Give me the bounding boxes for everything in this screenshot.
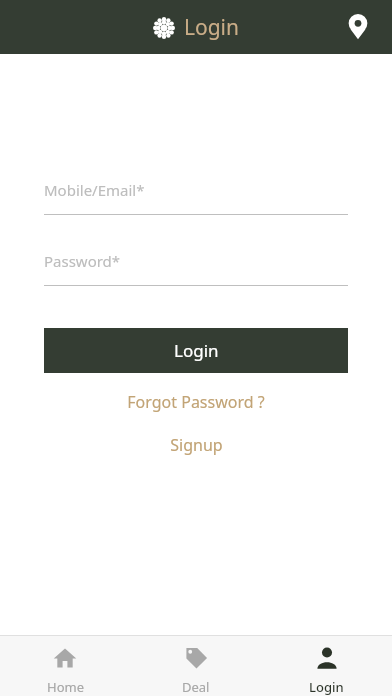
staticText: Login [309, 678, 344, 696]
staticText: Login [174, 339, 219, 362]
button[interactable]: Forgot Password ? [0, 391, 392, 413]
button[interactable]: Deal [130, 636, 261, 696]
button[interactable]: Mobile/Email* [44, 180, 348, 215]
button[interactable]: Signup [0, 434, 392, 456]
staticText: Forgot Password ? [127, 391, 265, 413]
staticText: Signup [170, 434, 223, 456]
staticText: Login [184, 13, 240, 42]
staticText: Home [47, 678, 84, 696]
button[interactable]: Password* [44, 251, 348, 286]
button[interactable]: Login [44, 328, 348, 373]
staticText: Deal [182, 678, 210, 696]
button[interactable]: Location [336, 5, 380, 49]
button[interactable]: Home [0, 636, 130, 696]
staticText: Mobile/Email* [44, 180, 145, 200]
staticText: Password* [44, 251, 121, 271]
button[interactable]: Login [261, 636, 392, 696]
